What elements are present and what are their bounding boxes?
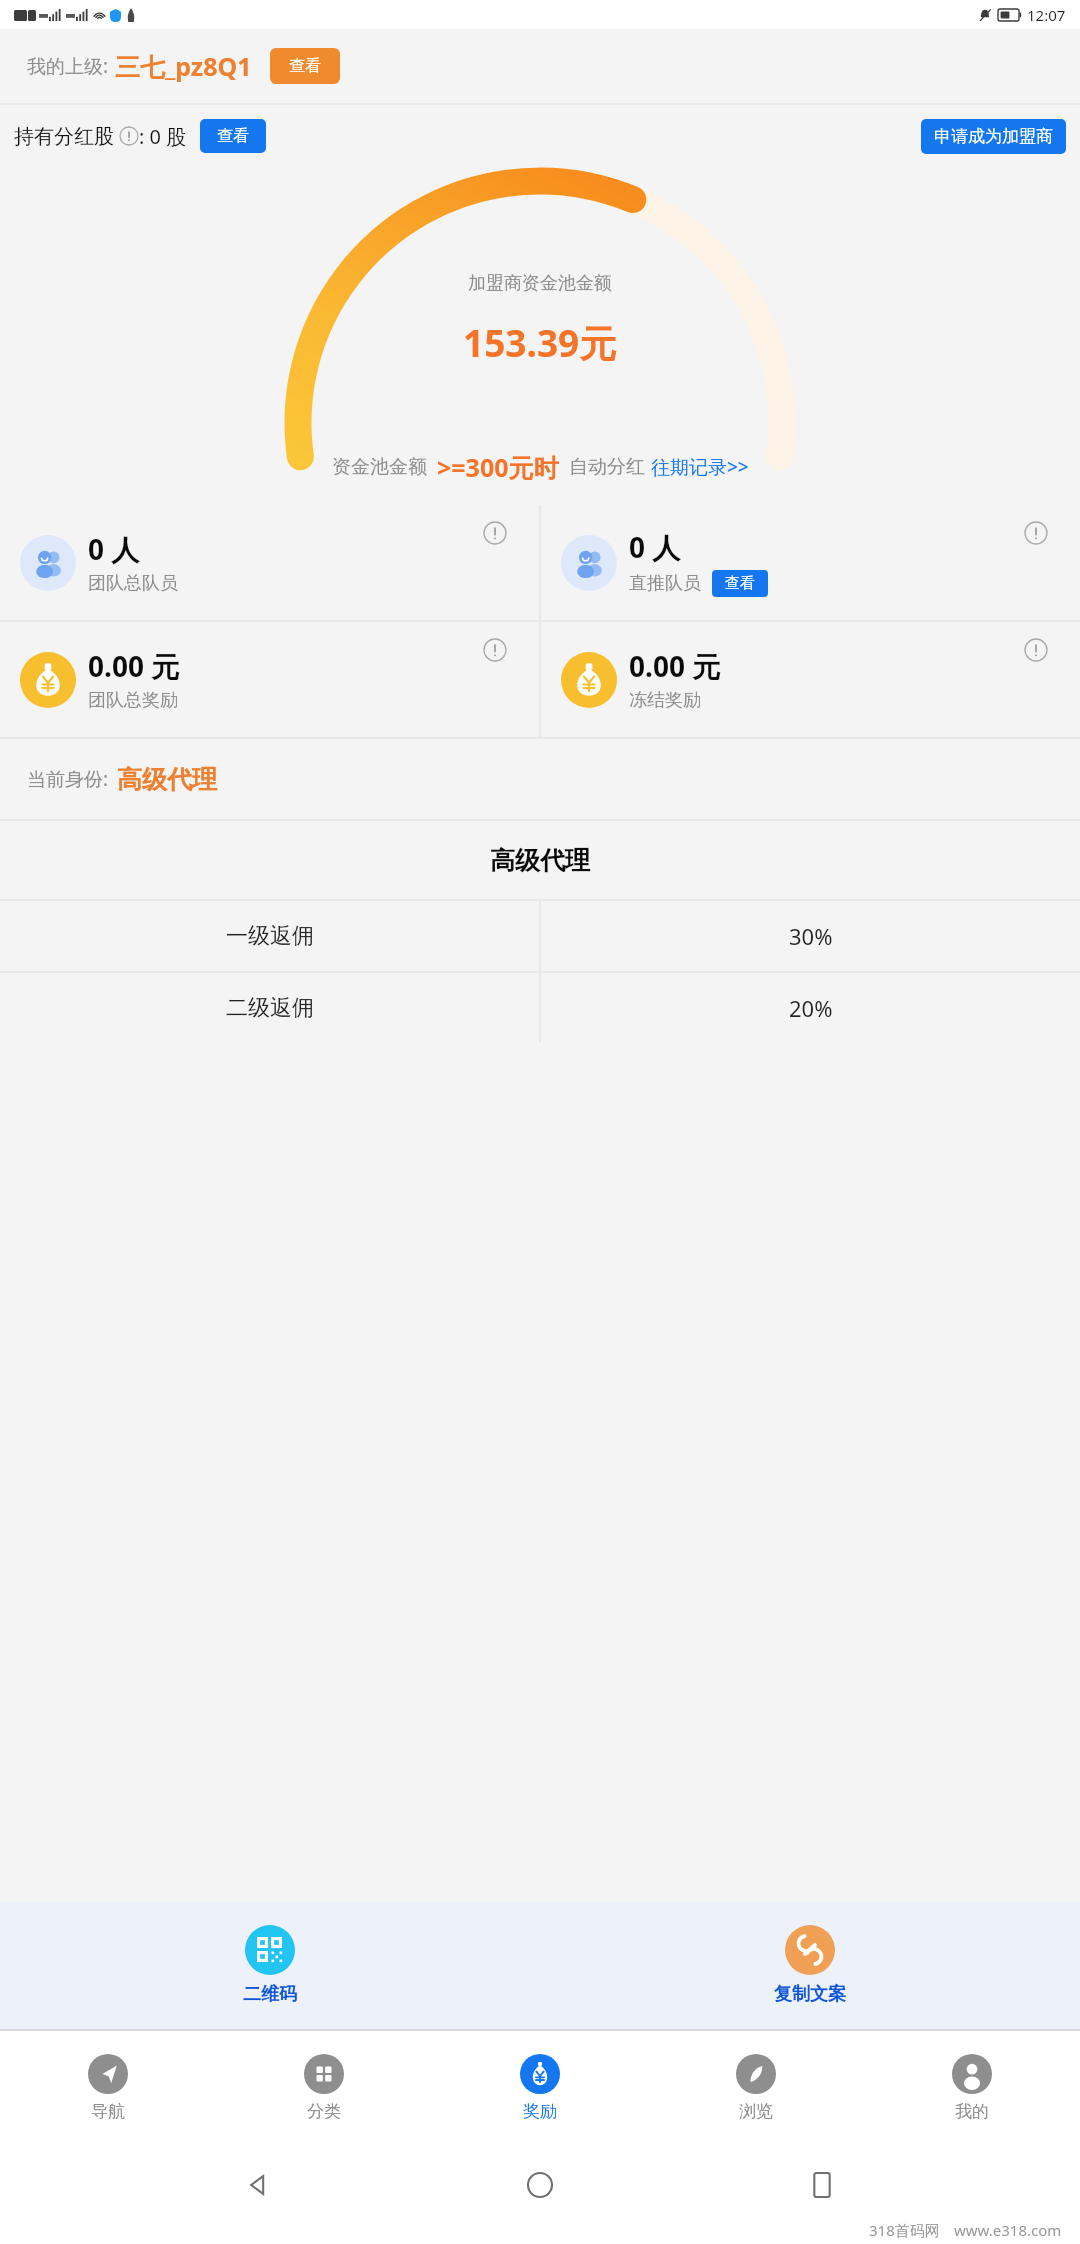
button[interactable]: 导航 xyxy=(0,2031,216,2144)
staticText: 查看 xyxy=(725,574,755,593)
staticText: 0 人 xyxy=(629,528,681,566)
button[interactable]: 0.00 元 xyxy=(541,622,1080,737)
button[interactable]: 查看 xyxy=(200,119,266,153)
button[interactable]: Recents xyxy=(799,2162,845,2208)
staticText: 团队总奖励 xyxy=(88,689,178,712)
staticText: : 0 股 xyxy=(139,123,187,150)
staticText: 资金池金额 xyxy=(332,455,427,479)
button[interactable]: 0 人 xyxy=(0,505,539,620)
staticText: 直推队员 xyxy=(629,572,701,595)
staticText: www.e318.com xyxy=(954,2220,1062,2240)
staticText: 自动分红 xyxy=(569,455,645,479)
staticText: 团队总队员 xyxy=(88,572,178,595)
staticText: 高级代理 xyxy=(117,764,217,795)
button[interactable]: 一级返佣 xyxy=(0,901,1080,971)
button[interactable]: 往期记录>> xyxy=(651,454,749,480)
staticText: 20% xyxy=(789,993,833,1023)
staticText: 冻结奖励 xyxy=(629,689,701,712)
staticText: >=300元时 xyxy=(437,450,559,484)
staticText: 二级返佣 xyxy=(226,994,314,1022)
staticText: 浏览 xyxy=(739,2101,773,2122)
staticText: 0 人 xyxy=(88,530,140,568)
staticText: 153.39元 xyxy=(463,317,617,368)
staticText: 复制文案 xyxy=(774,1983,846,2006)
button[interactable]: Back xyxy=(236,2162,282,2208)
staticText: 我的上级: xyxy=(27,53,109,79)
staticText: 导航 xyxy=(91,2101,125,2122)
staticText: 30% xyxy=(789,921,833,951)
staticText: 318首码网 xyxy=(869,2220,940,2240)
other: 二维码 xyxy=(245,1925,295,1975)
button[interactable]: 查看 xyxy=(270,48,340,84)
staticText: 查看 xyxy=(289,56,321,76)
staticText: 持有分红股 xyxy=(14,124,114,149)
button[interactable]: 申请成为加盟商 xyxy=(921,119,1066,154)
button[interactable]: Home xyxy=(517,2162,563,2208)
staticText: 往期记录>> xyxy=(651,454,749,480)
other: 复制文案 xyxy=(785,1925,835,1975)
staticText: 12:07 xyxy=(1027,5,1066,25)
staticText: 0.00 元 xyxy=(88,647,180,685)
button[interactable]: 二级返佣 xyxy=(0,973,1080,1043)
button[interactable]: 复制文案 xyxy=(774,1925,846,2006)
button[interactable]: 我的 xyxy=(864,2031,1080,2144)
staticText: 当前身份: xyxy=(27,766,109,792)
button[interactable]: 0.00 元 xyxy=(0,622,539,737)
staticText: 0.00 元 xyxy=(629,647,721,685)
staticText: 一级返佣 xyxy=(226,922,314,950)
button[interactable]: 二维码 xyxy=(243,1925,297,2006)
staticText: 加盟商资金池金额 xyxy=(468,272,612,295)
staticText: 奖励 xyxy=(523,2101,557,2122)
staticText: 三七_pz8Q1 xyxy=(115,49,252,83)
button[interactable]: 分类 xyxy=(216,2031,432,2144)
staticText: 分类 xyxy=(307,2101,341,2122)
button[interactable]: 0 人 xyxy=(541,505,1080,620)
staticText: 二维码 xyxy=(243,1983,297,2006)
button[interactable]: 奖励 xyxy=(432,2031,648,2144)
button[interactable]: 查看 xyxy=(712,570,768,597)
staticText: 我的 xyxy=(955,2101,989,2122)
staticText: 高级代理 xyxy=(490,845,590,876)
staticText: 查看 xyxy=(217,126,249,146)
staticText: 申请成为加盟商 xyxy=(934,126,1053,147)
button[interactable]: 浏览 xyxy=(648,2031,864,2144)
